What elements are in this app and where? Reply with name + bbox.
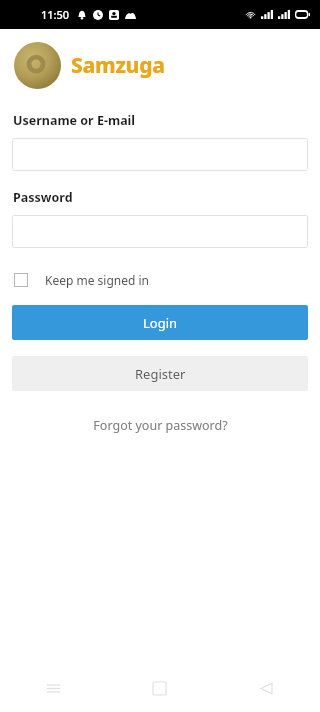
staticText: Username or E-mail: [13, 112, 136, 129]
button[interactable]: Login: [12, 305, 308, 340]
button[interactable]: Forgot your password?: [83, 414, 238, 437]
staticText: Samzuga: [71, 51, 165, 80]
button[interactable]: [12, 138, 308, 171]
staticText: 11:50: [41, 7, 70, 22]
staticText: Keep me signed in: [45, 272, 149, 288]
staticText: Login: [143, 314, 178, 332]
staticText: Password: [13, 189, 73, 206]
staticText: Forgot your password?: [93, 417, 228, 434]
staticText: Register: [135, 365, 186, 383]
button[interactable]: Register: [12, 356, 308, 391]
button[interactable]: [12, 215, 308, 248]
button[interactable]: Keep me signed in: [12, 270, 151, 290]
